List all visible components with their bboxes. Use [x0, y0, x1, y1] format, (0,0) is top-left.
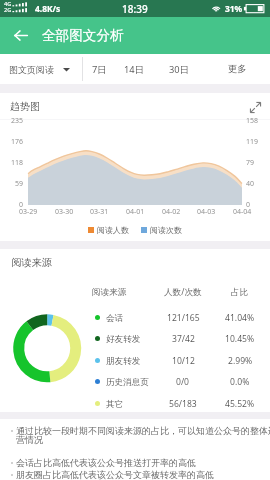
staticText: 10.45%: [225, 333, 255, 345]
button[interactable]: 图文页阅读: [5, 54, 78, 84]
staticText: 03-29: [19, 207, 38, 217]
staticText: 会话: [106, 313, 124, 324]
button[interactable]: 其它: [0, 393, 270, 415]
staticText: 176: [11, 137, 24, 147]
staticText: 历史消息页: [106, 377, 149, 388]
button[interactable]: 好友转发: [0, 328, 270, 350]
staticText: 119: [246, 137, 259, 147]
staticText: 118: [11, 158, 24, 168]
staticText: 04-03: [197, 207, 216, 217]
staticText: 79: [246, 158, 255, 168]
staticText: 通过比较一段时期不同阅读来源的占比，可以知道公众号的整体运营情况: [16, 425, 270, 446]
staticText: 朋友转发: [106, 356, 141, 367]
staticText: 235: [11, 116, 24, 126]
staticText: 阅读来源: [11, 256, 52, 269]
staticText: 0.0%: [230, 376, 250, 388]
staticText: 趋势图: [10, 100, 40, 113]
staticText: 56/183: [169, 398, 197, 410]
staticText: 占比: [231, 287, 249, 298]
staticText: 4.8K/s: [35, 3, 61, 14]
staticText: 0: [246, 200, 251, 210]
staticText: 14日: [124, 63, 144, 76]
staticText: 158: [246, 116, 259, 126]
staticText: 04-01: [126, 207, 145, 217]
staticText: 04-04: [233, 207, 252, 217]
button[interactable]: 14日: [116, 54, 152, 84]
staticText: 2.99%: [228, 355, 253, 367]
staticText: 03-31: [90, 207, 109, 217]
staticText: 会话占比高低代表该公众号推送打开率的高低: [16, 457, 196, 468]
staticText: 45.52%: [225, 398, 255, 410]
staticText: 0/0: [176, 376, 190, 388]
button[interactable]: 朋友转发: [0, 350, 270, 372]
staticText: 阅读人数: [97, 225, 129, 235]
staticText: 更多: [228, 63, 247, 75]
button[interactable]: 30日: [161, 54, 197, 84]
button[interactable]: Fullscreen: [247, 99, 263, 115]
staticText: 59: [15, 179, 24, 189]
staticText: 30日: [169, 63, 189, 76]
staticText: 04-02: [162, 207, 181, 217]
staticText: 40: [246, 179, 255, 189]
staticText: 好友转发: [106, 334, 141, 345]
staticText: 阅读次数: [150, 225, 182, 235]
staticText: 4G: [4, 0, 12, 8]
button[interactable]: 会话: [0, 307, 270, 329]
staticText: 121/165: [167, 312, 200, 324]
staticText: 10/12: [172, 355, 195, 367]
button[interactable]: Back: [8, 17, 34, 54]
button[interactable]: 7日: [81, 54, 117, 84]
staticText: 2G: [4, 6, 12, 14]
button[interactable]: 更多: [219, 54, 255, 84]
staticText: 18:39: [122, 2, 148, 16]
button[interactable]: 历史消息页: [0, 371, 270, 393]
staticText: 人数/次数: [164, 286, 202, 298]
staticText: 朋友圈占比高低代表该公众号文章被转发率的高低: [16, 469, 214, 480]
staticText: 41.04%: [225, 312, 255, 324]
staticText: 7日: [92, 63, 107, 76]
staticText: 37/42: [172, 333, 195, 345]
staticText: 图文页阅读: [9, 64, 54, 75]
staticText: 其它: [106, 399, 124, 410]
staticText: 全部图文分析: [42, 27, 124, 44]
staticText: 阅读来源: [92, 287, 127, 298]
staticText: 0: [19, 200, 24, 210]
staticText: 03-30: [55, 207, 74, 217]
staticText: 31%: [225, 3, 243, 14]
